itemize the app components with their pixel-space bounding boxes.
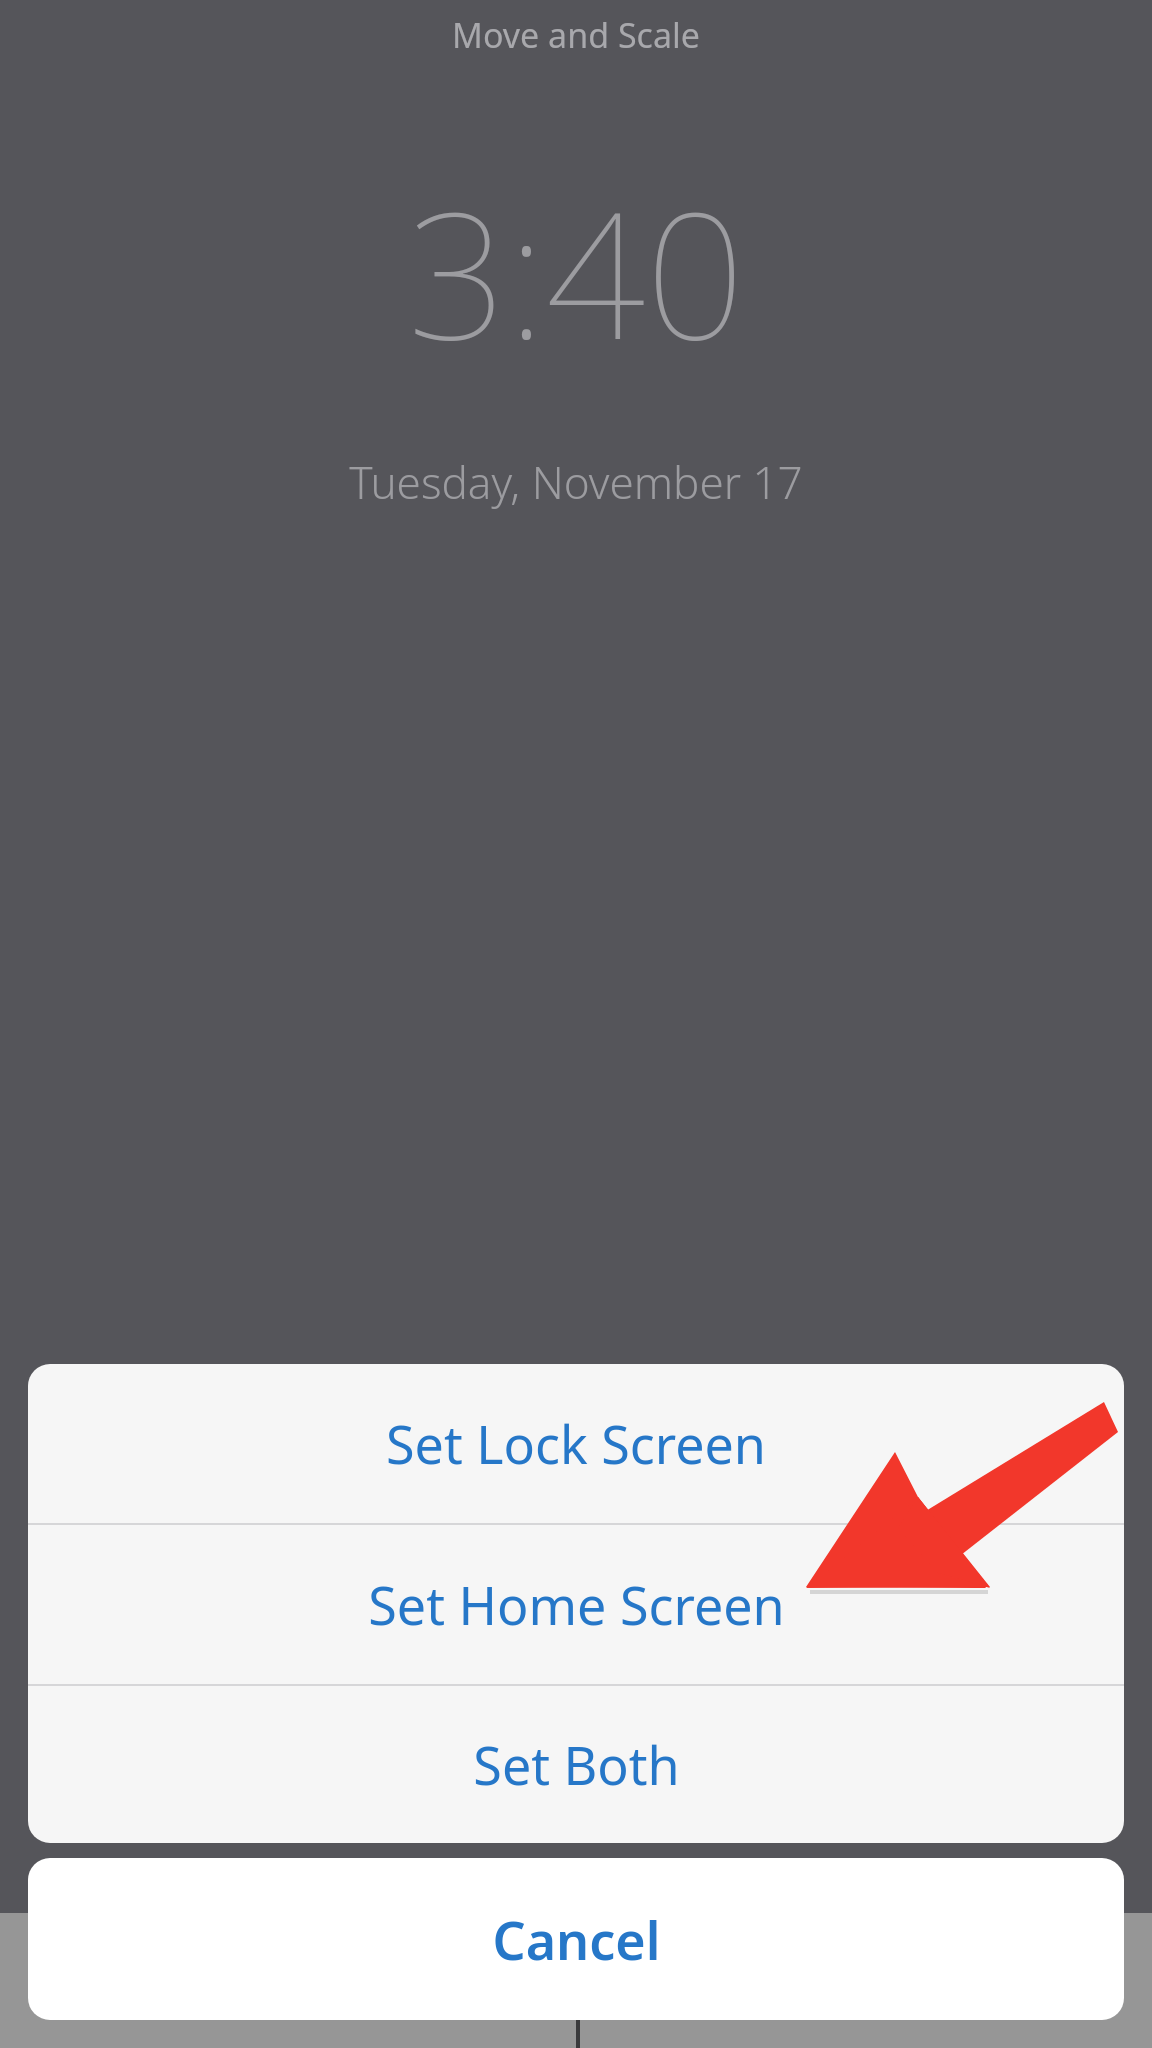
button[interactable]: Set Home Screen	[28, 1525, 1124, 1684]
staticText: Cancel	[492, 1904, 661, 1975]
other: Annotation arrow pointing to Set Home Sc…	[0, 0, 1152, 2048]
staticText: Tuesday, November 17	[349, 452, 803, 512]
button[interactable]: Set Lock Screen	[28, 1364, 1124, 1523]
button[interactable]: Set Both	[28, 1686, 1124, 1843]
staticText: Move and Scale	[452, 12, 700, 58]
staticText: 3:40	[407, 152, 745, 390]
staticText: Set Lock Screen	[386, 1408, 766, 1479]
staticText: Set Both	[473, 1729, 680, 1800]
staticText: Set Home Screen	[368, 1569, 785, 1640]
button[interactable]: Cancel	[28, 1858, 1124, 2020]
